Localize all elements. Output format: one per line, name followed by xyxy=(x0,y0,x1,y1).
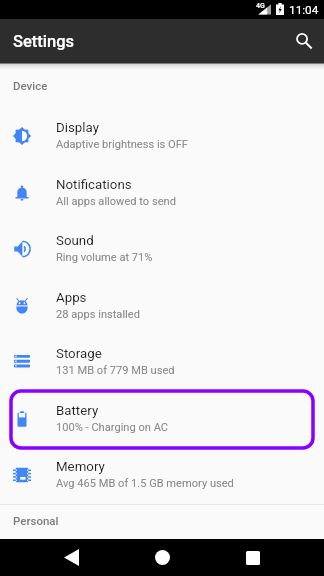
button[interactable]: Notifications xyxy=(0,164,324,221)
staticText: Storage xyxy=(56,346,102,362)
button[interactable]: Apps xyxy=(0,277,324,334)
button[interactable]: Memory xyxy=(0,446,324,503)
button[interactable]: Sound xyxy=(0,220,324,277)
button[interactable]: Storage xyxy=(0,333,324,390)
staticText: 131 MB of 779 MB used xyxy=(56,364,175,377)
button[interactable]: Battery xyxy=(0,390,324,447)
staticText: 11:04 xyxy=(289,3,319,17)
staticText: Ring volume at 71% xyxy=(56,251,153,264)
staticText: Apps xyxy=(56,290,87,306)
staticText: Avg 465 MB of 1.5 GB memory used xyxy=(56,477,234,490)
staticText: 28 apps installed xyxy=(56,308,140,321)
button[interactable]: Home xyxy=(140,539,184,576)
button[interactable]: Recents xyxy=(231,539,275,576)
staticText: 100% - Charging on AC xyxy=(56,421,169,434)
staticText: Device xyxy=(13,79,48,92)
staticText: Adaptive brightness is OFF xyxy=(56,138,188,151)
staticText: Personal xyxy=(13,514,59,527)
staticText: Memory xyxy=(56,459,105,475)
button[interactable]: Display xyxy=(0,107,324,164)
staticText: Display xyxy=(56,120,99,136)
staticText: All apps allowed to send xyxy=(56,195,176,208)
staticText: 4G xyxy=(256,2,265,10)
button[interactable]: Back xyxy=(49,539,93,576)
staticText: Battery xyxy=(56,403,99,419)
staticText: Notifications xyxy=(56,177,132,193)
staticText: Sound xyxy=(56,233,94,249)
button[interactable]: Search xyxy=(284,21,324,61)
staticText: Settings xyxy=(13,32,75,51)
